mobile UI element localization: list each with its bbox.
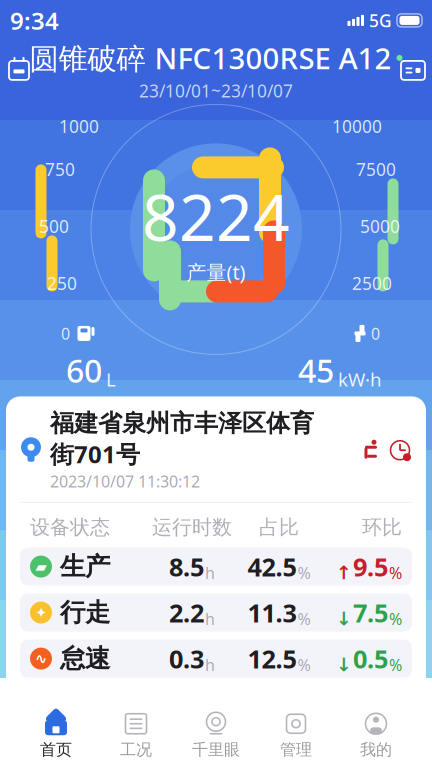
staticText: 产量(t) (186, 259, 245, 285)
staticText: 42.5 (247, 550, 296, 583)
staticText: 0 (61, 323, 70, 344)
button[interactable]: 我的 (336, 710, 416, 762)
staticText: h (205, 562, 215, 583)
button[interactable]: ∿ (20, 640, 412, 678)
staticText: 千里眼 (192, 740, 240, 759)
staticText: 8224 (142, 174, 290, 259)
staticText: 5000 (360, 215, 400, 238)
staticText: ↓ (336, 654, 352, 675)
staticText: 首页 (40, 740, 72, 759)
staticText: h (205, 654, 215, 675)
staticText: ↑ (336, 562, 352, 583)
staticText: % (297, 654, 310, 675)
button[interactable]: 首页 (16, 710, 96, 762)
staticText: 管理 (280, 740, 312, 759)
staticText: 750 (45, 158, 75, 181)
staticText: 我的 (360, 740, 392, 759)
staticText: 环比 (362, 515, 402, 540)
staticText: % (297, 608, 310, 629)
staticText: 250 (47, 272, 77, 295)
staticText: kW·h (338, 367, 382, 392)
staticText: ▰ (35, 558, 46, 575)
staticText: 怠速 (60, 643, 110, 674)
staticText: 0.5 (353, 642, 388, 675)
staticText: 占比 (259, 515, 299, 540)
staticText: 2.2 (169, 596, 204, 629)
staticText: 2500 (352, 272, 392, 295)
staticText: 2023/10/07 11:30:12 (50, 471, 200, 492)
staticText: h (205, 608, 215, 629)
staticText: 9.5 (353, 550, 388, 583)
staticText: L (106, 367, 116, 392)
button[interactable]: 工况 (96, 710, 176, 762)
staticText: % (389, 562, 402, 583)
button[interactable]: Alerts (388, 438, 412, 462)
button[interactable]: 千里眼 (176, 710, 256, 762)
button[interactable]: ▰ (20, 548, 412, 586)
staticText: 0.3 (169, 642, 204, 675)
staticText: 运行时数 (152, 515, 232, 540)
button[interactable]: Select date range (4, 55, 34, 85)
staticText: ✦ (35, 604, 47, 621)
staticText: 11.3 (247, 596, 296, 629)
staticText: 7500 (356, 158, 396, 181)
button[interactable]: Device details (398, 55, 428, 85)
staticText: 1000 (59, 115, 99, 138)
staticText: % (297, 562, 310, 583)
staticText: % (389, 608, 402, 629)
staticText: 行走 (60, 597, 110, 628)
staticText: ↓ (336, 608, 352, 629)
staticText: 45 (298, 349, 334, 392)
staticText: 9:34 (10, 4, 59, 36)
staticText: 12.5 (247, 642, 296, 675)
staticText: 7.5 (353, 596, 388, 629)
staticText: 工况 (120, 740, 152, 759)
button[interactable]: Trip (358, 439, 380, 461)
staticText: 生产 (60, 551, 110, 582)
staticText: 0 (371, 323, 380, 344)
staticText: 5G (369, 9, 392, 32)
staticText: 60 (66, 349, 102, 392)
staticText: 23/10/01~23/10/07 (139, 79, 293, 102)
button[interactable]: 管理 (256, 710, 336, 762)
staticText: % (389, 654, 402, 675)
staticText: 福建省泉州市丰泽区体育街701号 (50, 408, 314, 470)
staticText: 500 (39, 215, 69, 238)
staticText: ∿ (35, 650, 47, 667)
staticText: 设备状态 (30, 515, 110, 540)
staticText: 圆锥破碎 NFC1300RSE A12 (29, 38, 391, 77)
button[interactable]: ✦ (20, 594, 412, 632)
staticText: 10000 (332, 115, 382, 138)
staticText: 8.5 (169, 550, 204, 583)
